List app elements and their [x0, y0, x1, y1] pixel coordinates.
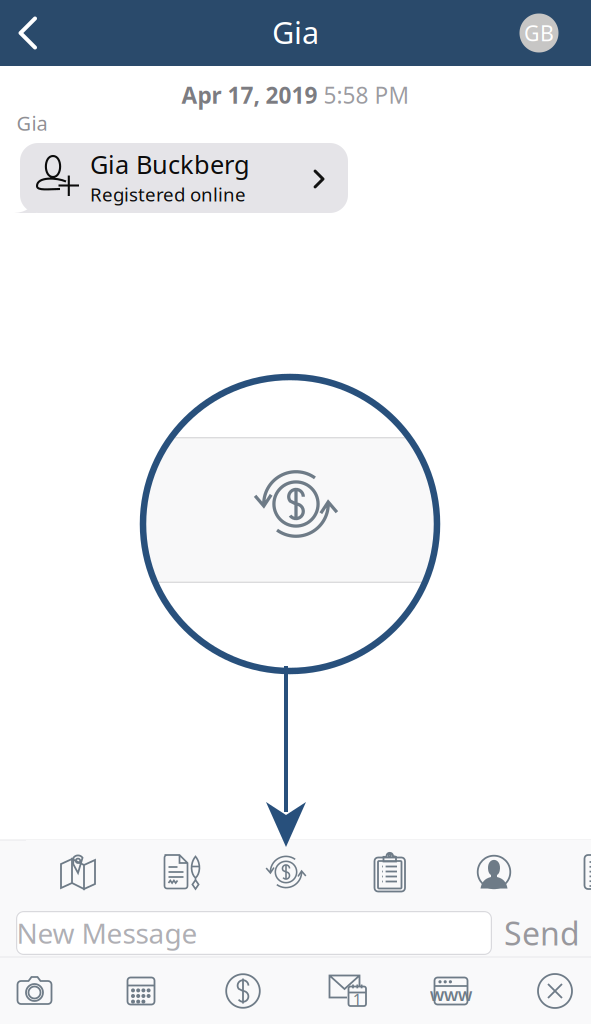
- staticText: Send: [504, 912, 580, 954]
- button[interactable]: Notes: [546, 840, 591, 904]
- button[interactable]: Calculator: [91, 960, 191, 1022]
- button[interactable]: Payment: [193, 960, 293, 1022]
- staticText: Gia: [272, 12, 319, 52]
- staticText: Registered online: [90, 182, 246, 207]
- staticText: GB: [524, 19, 554, 47]
- button[interactable]: Payment request: [234, 840, 338, 904]
- button[interactable]: Camera: [0, 960, 85, 1022]
- button[interactable]: Back: [0, 2, 57, 64]
- button[interactable]: Signed document: [130, 840, 234, 904]
- staticText: Gia: [16, 110, 47, 136]
- button[interactable]: Contact profile: [510, 2, 568, 64]
- staticText: WWW: [430, 986, 472, 1005]
- button[interactable]: Contact: [442, 840, 546, 904]
- staticText: Gia Buckberg: [90, 147, 250, 181]
- button[interactable]: Schedule email: [298, 960, 398, 1022]
- button[interactable]: New Message: [16, 911, 492, 955]
- staticText: 1: [353, 989, 362, 1010]
- button[interactable]: Checklist: [338, 840, 442, 904]
- staticText: 5:58 PM: [323, 80, 409, 110]
- button[interactable]: Close: [505, 960, 591, 1022]
- staticText: New Message: [16, 914, 197, 952]
- button[interactable]: Send: [498, 910, 586, 956]
- button[interactable]: Website: [401, 960, 501, 1022]
- staticText: Apr 17, 2019: [181, 80, 317, 110]
- button[interactable]: Gia Buckberg: [14, 143, 348, 213]
- button[interactable]: Map: [26, 840, 130, 904]
